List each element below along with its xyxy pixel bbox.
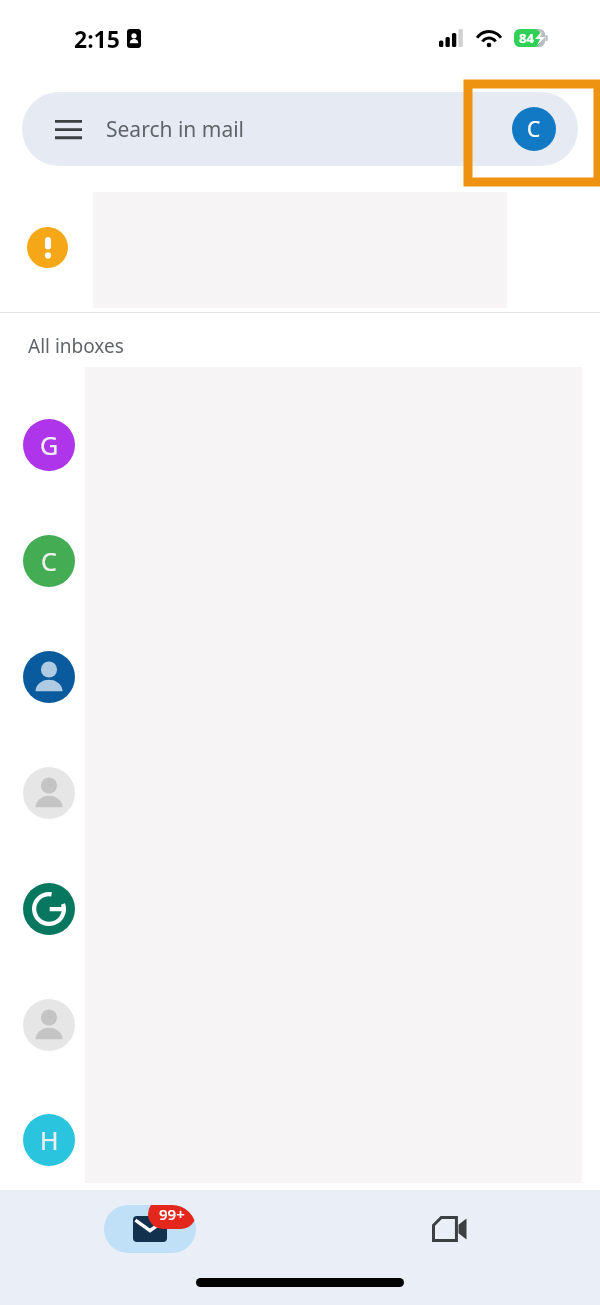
staticText: 2:15: [74, 23, 120, 54]
staticText: 84: [519, 29, 534, 47]
button[interactable]: H: [0, 1083, 600, 1197]
button[interactable]: Account profile: [512, 107, 556, 151]
button[interactable]: G: [0, 387, 600, 503]
button[interactable]: Open navigation menu: [44, 105, 92, 153]
staticText: Search in mail: [106, 115, 245, 144]
staticText: All inboxes: [28, 333, 124, 359]
staticText: G: [40, 428, 59, 462]
button[interactable]: Open navigation menu: [22, 92, 578, 166]
button[interactable]: Meet: [404, 1205, 496, 1253]
button[interactable]: Warning: [27, 227, 68, 268]
button[interactable]: [0, 851, 600, 967]
button[interactable]: Mail, 99+ unread: [104, 1205, 196, 1253]
button[interactable]: [0, 619, 600, 735]
staticText: C: [527, 115, 541, 144]
staticText: 99+: [159, 1205, 185, 1224]
staticText: C: [41, 544, 57, 578]
button[interactable]: C: [0, 503, 600, 619]
staticText: H: [40, 1123, 59, 1157]
button[interactable]: [0, 735, 600, 851]
button[interactable]: [0, 967, 600, 1083]
